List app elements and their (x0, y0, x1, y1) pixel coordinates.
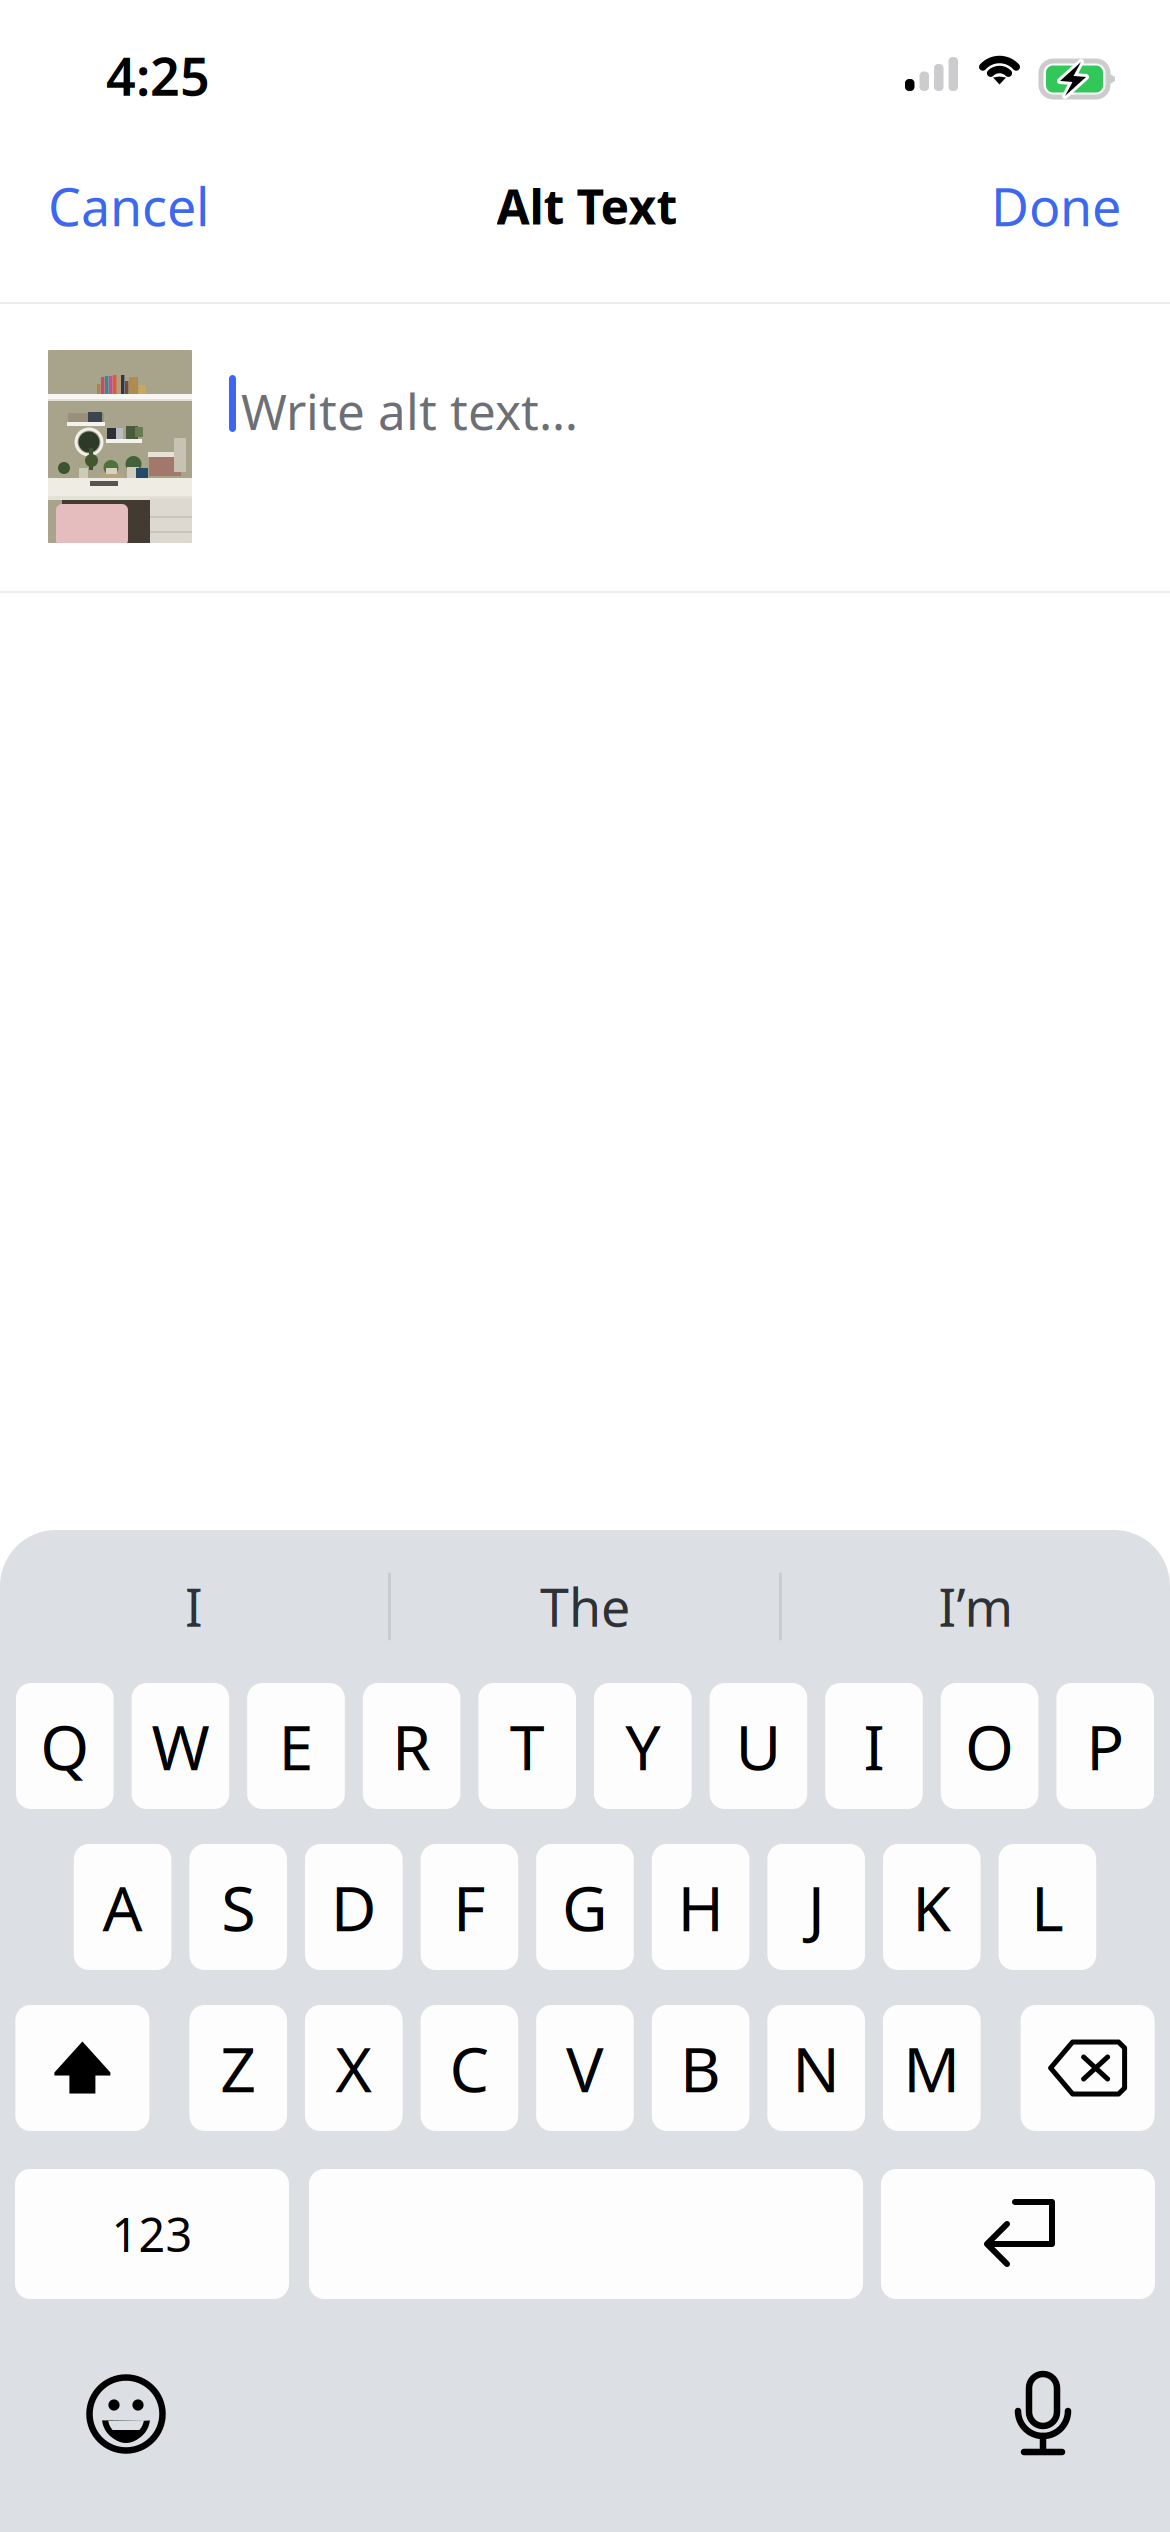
staticText: F (453, 1865, 486, 1949)
staticText: O (965, 1704, 1014, 1788)
staticText: W (151, 1704, 209, 1788)
button[interactable]: F (421, 1844, 518, 1970)
button[interactable]: I’m (782, 1530, 1170, 1683)
button[interactable]: K (883, 1844, 981, 1970)
staticText: Done (991, 171, 1121, 241)
button[interactable]: C (421, 2005, 518, 2131)
button[interactable]: T (478, 1683, 576, 1809)
staticText: 123 (111, 2203, 192, 2265)
button[interactable]: Done (971, 151, 1121, 261)
button[interactable]: Write alt text… (229, 375, 1129, 455)
button[interactable]: 123 (15, 2169, 289, 2299)
button[interactable]: W (132, 1683, 229, 1809)
button[interactable]: R (363, 1683, 460, 1809)
staticText: V (566, 2026, 604, 2110)
button[interactable]: L (999, 1844, 1096, 1970)
button[interactable]: Dictation (1015, 2371, 1071, 2457)
staticText: I (185, 1572, 203, 1641)
button[interactable]: Delete (1021, 2005, 1155, 2131)
button[interactable]: S (189, 1844, 287, 1970)
button[interactable]: Shift (15, 2005, 149, 2131)
staticText: Write alt text… (241, 378, 578, 443)
staticText: X (335, 2026, 372, 2110)
button[interactable]: Return (881, 2169, 1155, 2299)
staticText: R (392, 1704, 431, 1788)
button[interactable]: D (305, 1844, 403, 1970)
button[interactable]: The (391, 1530, 779, 1683)
button[interactable]: B (652, 2005, 749, 2131)
button[interactable]: Z (189, 2005, 287, 2131)
button[interactable]: Cancel (48, 151, 230, 261)
staticText: Z (220, 2026, 256, 2110)
staticText: Alt Text (496, 174, 677, 238)
staticText: I’m (938, 1572, 1013, 1641)
staticText: A (103, 1865, 143, 1949)
staticText: I (863, 1704, 884, 1788)
staticText: The (540, 1572, 630, 1641)
button[interactable]: M (883, 2005, 981, 2131)
staticText: N (792, 2026, 840, 2110)
staticText: T (510, 1704, 545, 1788)
button[interactable]: V (536, 2005, 634, 2131)
button[interactable]: O (941, 1683, 1038, 1809)
button[interactable]: X (305, 2005, 403, 2131)
button[interactable]: Alt Text (442, 151, 732, 261)
button[interactable]: Q (16, 1683, 114, 1809)
button[interactable]: I (0, 1530, 388, 1683)
staticText: E (278, 1704, 313, 1788)
staticText: K (912, 1865, 951, 1949)
staticText: U (735, 1704, 781, 1788)
staticText: Y (625, 1704, 660, 1788)
staticText: J (808, 1865, 825, 1949)
staticText: P (1086, 1704, 1124, 1788)
button[interactable]: G (536, 1844, 634, 1970)
button[interactable]: J (767, 1844, 865, 1970)
button[interactable]: I (825, 1683, 923, 1809)
staticText: M (903, 2026, 960, 2110)
button[interactable]: Emoji (86, 2374, 166, 2454)
button[interactable]: N (767, 2005, 865, 2131)
button[interactable]: Y (594, 1683, 692, 1809)
button[interactable]: U (710, 1683, 807, 1809)
staticText: C (449, 2026, 489, 2110)
staticText: S (221, 1865, 255, 1949)
button[interactable]: H (652, 1844, 749, 1970)
button[interactable]: A (74, 1844, 171, 1970)
staticText: H (678, 1865, 724, 1949)
staticText: G (562, 1865, 608, 1949)
staticText: 4:25 (106, 41, 210, 110)
staticText: Q (40, 1704, 89, 1788)
staticText: Cancel (48, 171, 209, 241)
staticText: L (1031, 1865, 1064, 1949)
staticText: D (331, 1865, 377, 1949)
button[interactable]: E (247, 1683, 345, 1809)
button[interactable]: P (1056, 1683, 1154, 1809)
staticText: B (680, 2026, 721, 2110)
